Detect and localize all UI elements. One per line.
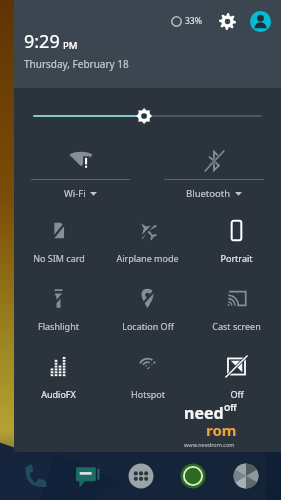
staticText: Thursday, February 18	[24, 57, 129, 71]
button[interactable]: AudioFX	[14, 344, 103, 412]
staticText: PM	[63, 39, 78, 52]
button[interactable]: Bluetooth	[147, 144, 281, 208]
button[interactable]: User profile	[248, 9, 272, 33]
button[interactable]: Phone	[19, 459, 53, 493]
button[interactable]: Location Off	[103, 276, 192, 344]
button[interactable]: All apps	[124, 459, 158, 493]
staticText: AudioFX	[41, 388, 76, 400]
button[interactable]: Cast screen	[192, 276, 281, 344]
staticText: 33%	[185, 15, 202, 27]
button[interactable]: No SIM card	[14, 208, 103, 276]
button[interactable]: Browser	[176, 459, 210, 493]
staticText: Off	[224, 402, 237, 413]
staticText: 9:29	[24, 29, 60, 54]
staticText: Portrait	[220, 252, 253, 264]
button[interactable]: Wi-Fi	[14, 144, 147, 208]
button[interactable]: Off	[192, 344, 281, 412]
staticText: www.needrom.com	[184, 441, 235, 448]
staticText: Wi-Fi	[64, 187, 86, 200]
staticText: Flashlight	[38, 320, 79, 332]
button[interactable]: Flashlight	[14, 276, 103, 344]
staticText: need	[184, 402, 224, 424]
staticText: Cast screen	[212, 320, 261, 332]
button[interactable]: Hotspot	[103, 344, 192, 412]
button[interactable]: Portrait	[192, 208, 281, 276]
button[interactable]: Settings	[215, 9, 239, 33]
staticText: Hotspot	[131, 388, 165, 400]
staticText: No SIM card	[33, 252, 85, 264]
button[interactable]: Messaging	[71, 459, 105, 493]
button[interactable]: Airplane mode	[103, 208, 192, 276]
button[interactable]: Brightness	[14, 88, 281, 144]
staticText: Location Off	[122, 320, 174, 332]
staticText: Bluetooth	[186, 187, 231, 200]
staticText: rom	[206, 420, 237, 440]
staticText: Off	[230, 388, 244, 400]
button[interactable]: Battery 33 percent	[169, 13, 204, 29]
button[interactable]: Camera	[229, 459, 263, 493]
staticText: Airplane mode	[116, 252, 179, 264]
